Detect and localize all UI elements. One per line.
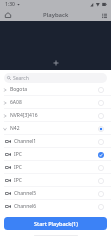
button[interactable]: IPC (0, 174, 111, 187)
staticText: IPC (14, 164, 22, 171)
button[interactable]: Start Playback(1) (4, 217, 107, 230)
button[interactable]: Select channel (97, 125, 105, 133)
staticText: Start Playback(1) (34, 220, 78, 227)
button[interactable]: Select channel (97, 151, 105, 159)
button[interactable]: Channel6 (0, 200, 111, 213)
button[interactable]: Select channel (97, 203, 105, 211)
staticText: Channel6 (14, 203, 37, 210)
button[interactable]: Channel1 (0, 135, 111, 148)
staticText: Channel5 (14, 190, 37, 197)
button[interactable]: Select channel (97, 190, 105, 198)
button[interactable]: Select channel (97, 86, 105, 94)
button[interactable]: Select channel (97, 164, 105, 172)
button[interactable]: Select channel (97, 112, 105, 120)
staticText: Bogota (10, 86, 27, 93)
staticText: Search (13, 75, 29, 82)
button[interactable]: Channel5 (0, 187, 111, 200)
staticText: 1:30 (5, 1, 15, 8)
button[interactable]: Options (99, 10, 109, 20)
staticText: N42 (10, 125, 20, 132)
staticText: IPC (14, 151, 22, 158)
button[interactable]: Home (3, 10, 13, 20)
button[interactable]: IPC (0, 161, 111, 174)
button[interactable]: 6A08 (0, 96, 111, 109)
staticText: Channel1 (14, 138, 37, 145)
staticText: 6A08 (10, 99, 22, 106)
button[interactable]: Search (4, 73, 107, 83)
button[interactable]: Select channel (97, 99, 105, 107)
button[interactable]: NVR4[3]416 (0, 109, 111, 122)
button[interactable]: Add window (53, 60, 59, 66)
button[interactable]: IPC (0, 148, 111, 161)
button[interactable]: N42 (0, 122, 111, 135)
button[interactable]: Select channel (97, 177, 105, 185)
staticText: Playback (43, 11, 69, 19)
staticText: NVR4[3]416 (10, 112, 38, 119)
button[interactable]: Select channel (97, 138, 105, 146)
button[interactable]: Bogota (0, 83, 111, 96)
staticText: IPC (14, 177, 22, 184)
